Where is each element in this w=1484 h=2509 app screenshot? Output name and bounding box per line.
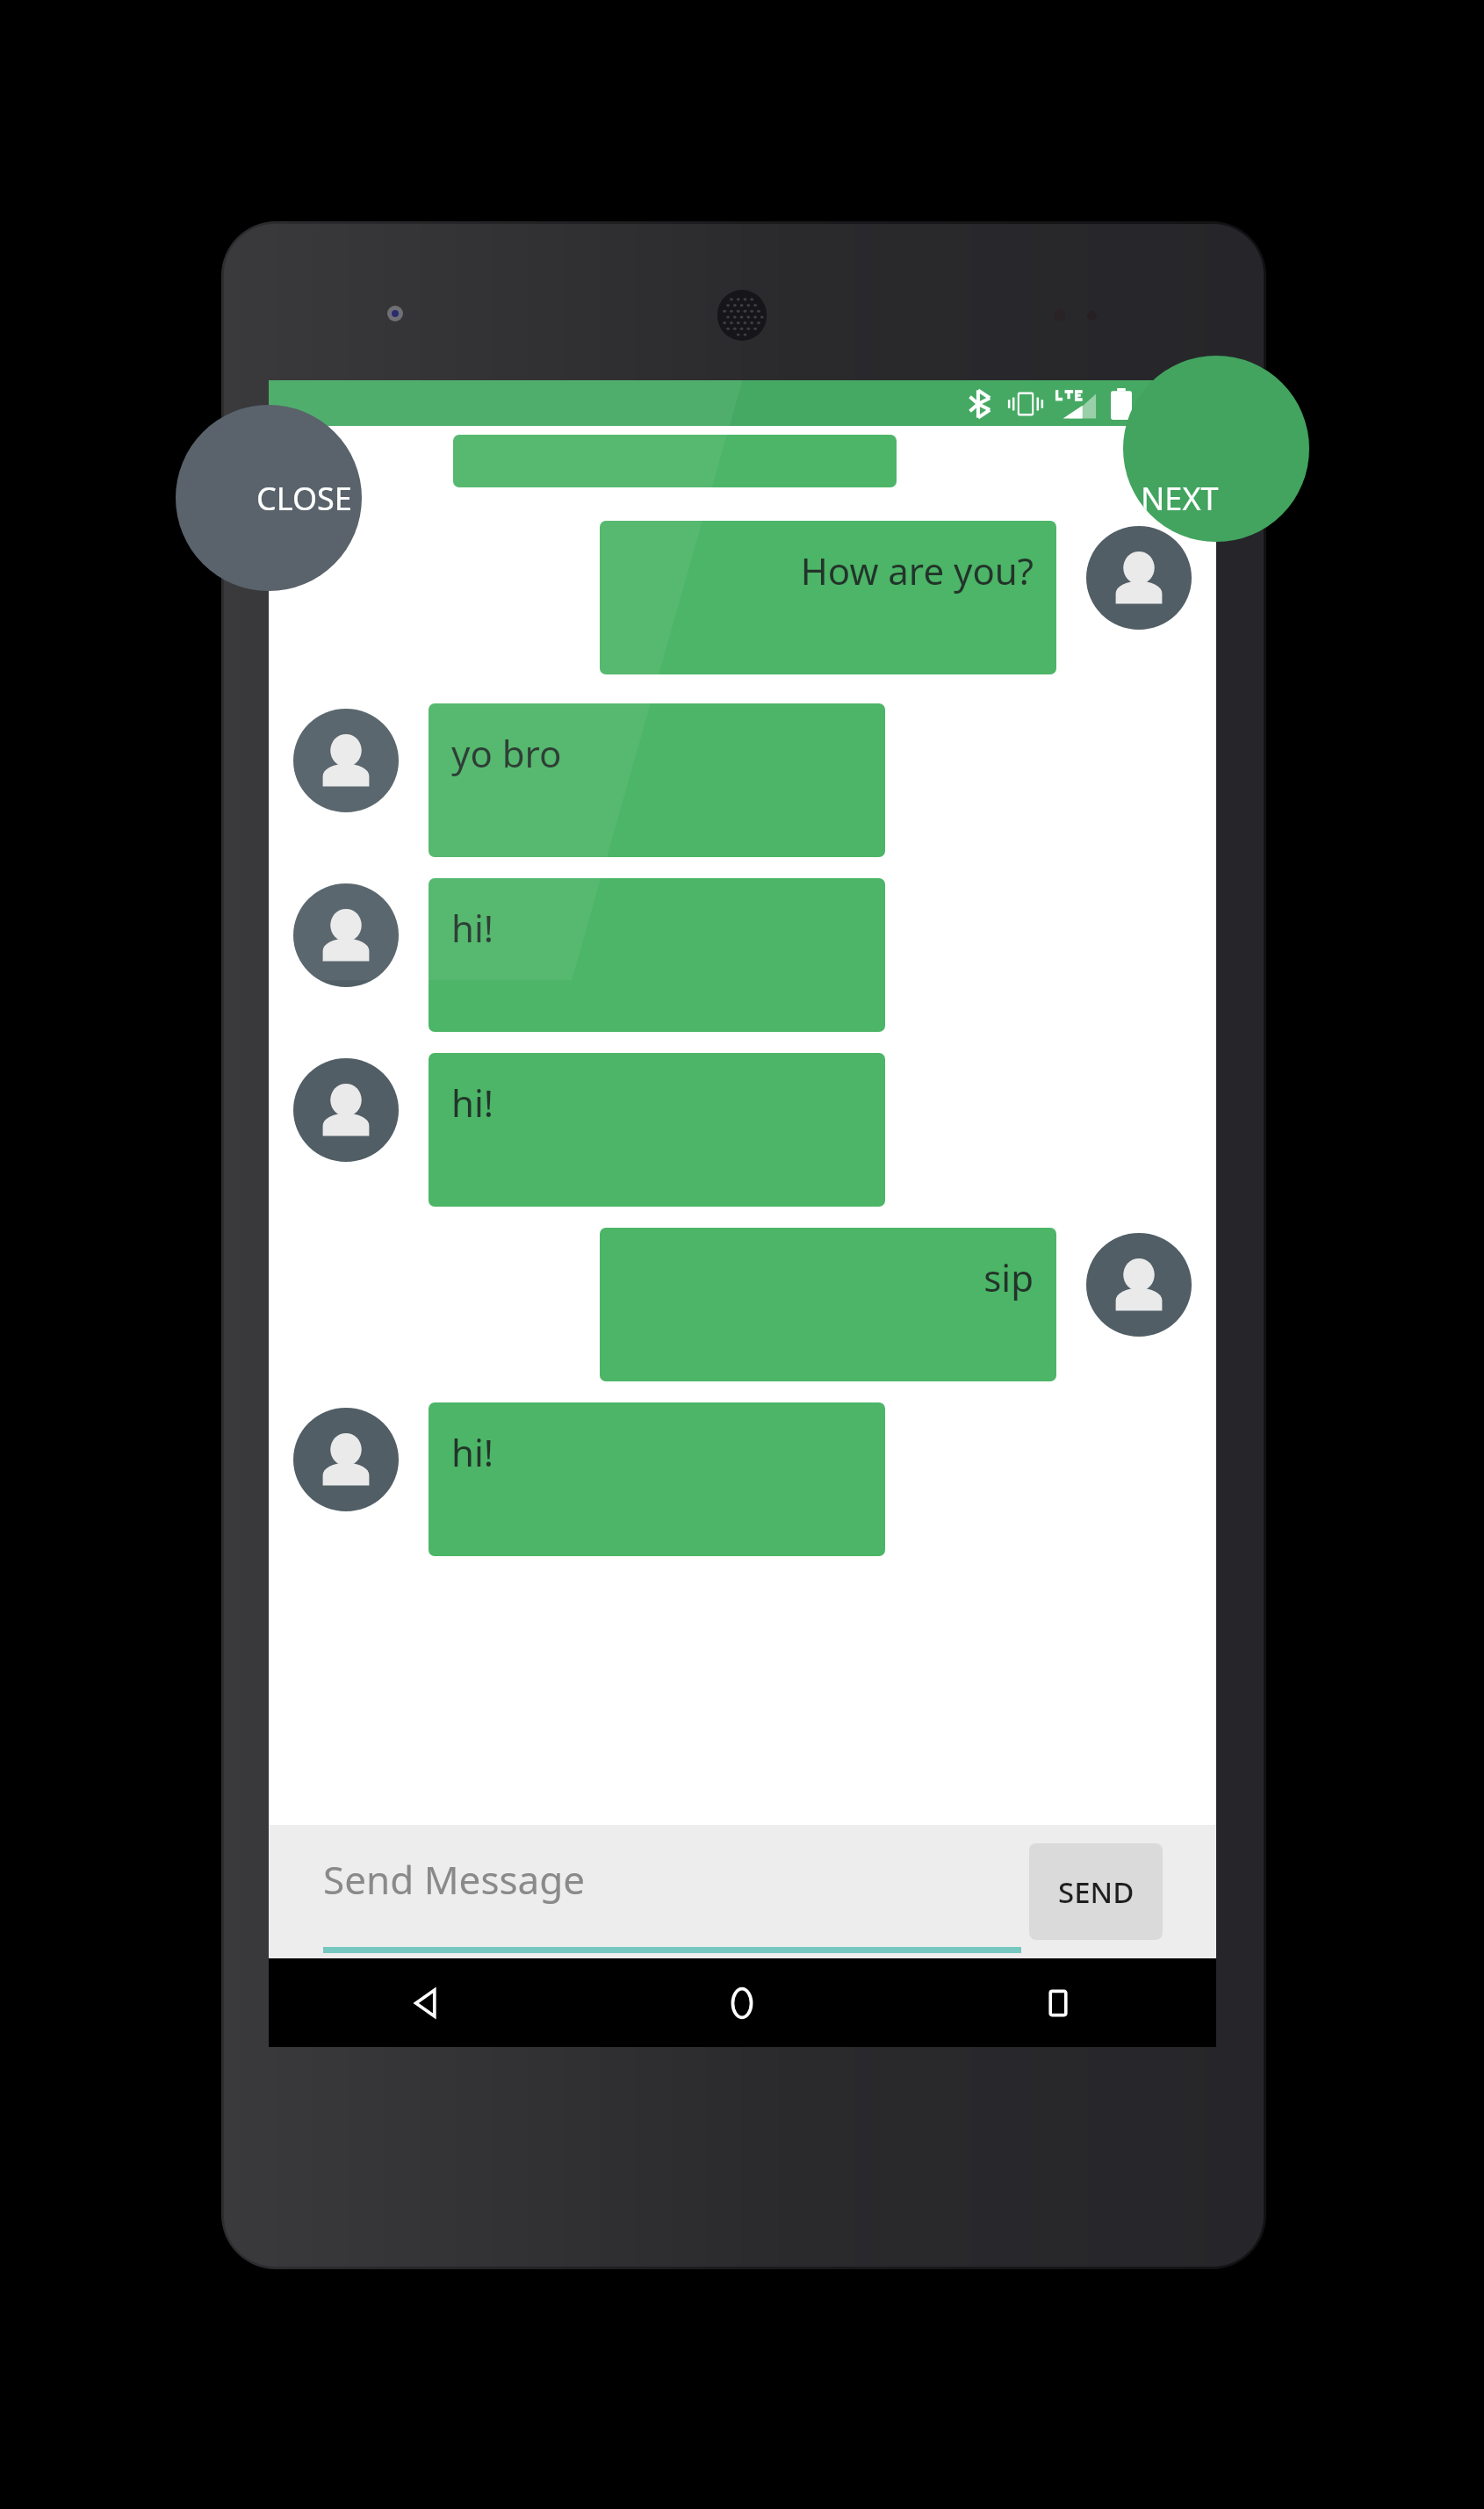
staticText: hi! bbox=[451, 903, 494, 953]
staticText: Send Message bbox=[323, 1853, 586, 1906]
staticText: sip bbox=[983, 1252, 1034, 1302]
button[interactable]: hi! bbox=[429, 1402, 885, 1556]
button[interactable]: Contact avatar bbox=[293, 709, 399, 812]
button[interactable]: Recents bbox=[900, 1958, 1216, 2047]
button[interactable]: NEXT bbox=[1123, 356, 1309, 542]
button[interactable]: Back bbox=[269, 1958, 584, 2047]
button[interactable]: My avatar bbox=[1086, 526, 1192, 630]
staticText: SEND bbox=[1058, 1872, 1135, 1912]
staticText: CLOSE bbox=[256, 477, 352, 520]
button[interactable]: yo bro bbox=[429, 703, 885, 857]
staticText: yo bro bbox=[451, 728, 562, 778]
button[interactable]: sip bbox=[600, 1228, 1056, 1381]
button[interactable]: SEND bbox=[1029, 1843, 1163, 1940]
button[interactable]: How are you? bbox=[600, 521, 1056, 674]
button[interactable]: Send Message bbox=[323, 1865, 1021, 1918]
staticText: hi! bbox=[451, 1427, 494, 1477]
button[interactable]: Contact avatar bbox=[293, 1408, 399, 1511]
staticText: NEXT bbox=[1141, 477, 1219, 520]
button[interactable]: My avatar bbox=[1086, 1233, 1192, 1337]
staticText: How are you? bbox=[800, 545, 1034, 595]
button[interactable]: hi! bbox=[429, 878, 885, 1032]
button[interactable]: Home bbox=[584, 1958, 900, 2047]
button[interactable]: Contact avatar bbox=[293, 883, 399, 987]
button[interactable] bbox=[453, 435, 897, 487]
button[interactable]: CLOSE bbox=[176, 405, 362, 591]
staticText: hi! bbox=[451, 1078, 494, 1128]
button[interactable]: Contact avatar bbox=[293, 1058, 399, 1162]
button[interactable]: hi! bbox=[429, 1053, 885, 1207]
